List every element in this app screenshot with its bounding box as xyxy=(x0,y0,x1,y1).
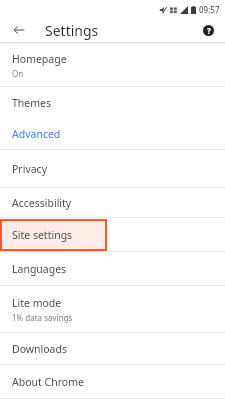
button[interactable]: Lite mode xyxy=(0,286,225,332)
button[interactable]: Privacy xyxy=(0,150,225,187)
staticText: ? xyxy=(207,25,211,36)
staticText: Homepage xyxy=(12,52,67,66)
button[interactable]: Site settings xyxy=(0,218,225,251)
staticText: 1% data savings xyxy=(12,312,73,323)
button[interactable]: About Chrome xyxy=(0,365,225,398)
staticText: Settings xyxy=(45,21,99,40)
button[interactable]: Homepage xyxy=(0,44,225,86)
staticText: 09:57 xyxy=(199,4,220,15)
staticText: Privacy xyxy=(12,162,48,176)
button[interactable]: Languages xyxy=(0,252,225,285)
button[interactable]: Back xyxy=(8,19,30,41)
staticText: Languages xyxy=(12,262,67,276)
button[interactable]: Help xyxy=(198,20,218,40)
staticText: Advanced xyxy=(12,127,61,141)
staticText: Themes xyxy=(12,96,52,110)
button[interactable]: Downloads xyxy=(0,333,225,364)
staticText: Accessibility xyxy=(12,196,72,210)
staticText: Downloads xyxy=(12,342,67,356)
staticText: About Chrome xyxy=(12,375,84,389)
button[interactable]: Themes xyxy=(0,87,225,118)
button[interactable]: Advanced xyxy=(0,118,225,149)
staticText: Site settings xyxy=(12,228,73,242)
staticText: Lite mode xyxy=(12,296,62,310)
button[interactable]: Accessibility xyxy=(0,188,225,217)
staticText: On xyxy=(12,68,24,79)
